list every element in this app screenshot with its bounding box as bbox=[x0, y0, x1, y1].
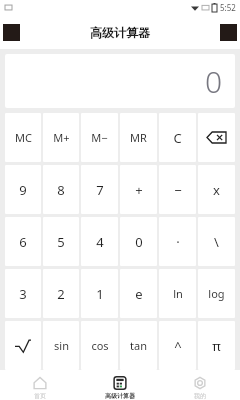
staticText: M− bbox=[91, 130, 108, 145]
staticText: − bbox=[174, 181, 182, 199]
button[interactable]: 7 bbox=[81, 165, 118, 214]
button[interactable]: Backspace bbox=[198, 113, 235, 162]
staticText: 3 bbox=[19, 285, 27, 303]
button[interactable]: 0 bbox=[120, 217, 157, 266]
staticText: MC bbox=[15, 130, 32, 145]
button[interactable]: 3 bbox=[5, 269, 41, 318]
staticText: sin bbox=[54, 338, 69, 353]
button[interactable]: log bbox=[198, 269, 235, 318]
staticText: 高级计算器 bbox=[105, 392, 135, 400]
staticText: 2 bbox=[57, 285, 65, 303]
staticText: π bbox=[212, 337, 221, 355]
button[interactable]: 4 bbox=[81, 217, 118, 266]
staticText: 4 bbox=[96, 233, 104, 251]
staticText: e bbox=[135, 285, 143, 303]
button[interactable]: 高级计算器 bbox=[80, 371, 160, 400]
button[interactable]: MR bbox=[120, 113, 157, 162]
button[interactable]: 5 bbox=[43, 217, 79, 266]
staticText: cos bbox=[91, 338, 109, 353]
button[interactable]: sin bbox=[43, 321, 79, 370]
button[interactable]: − bbox=[159, 165, 196, 214]
button[interactable]: 0 bbox=[5, 54, 235, 108]
button[interactable]: C bbox=[159, 113, 196, 162]
button[interactable]: x bbox=[198, 165, 235, 214]
button[interactable]: 9 bbox=[5, 165, 41, 214]
staticText: 我的 bbox=[194, 392, 206, 400]
staticText: 6 bbox=[19, 233, 27, 251]
button[interactable]: MC bbox=[5, 113, 41, 162]
staticText: x bbox=[213, 181, 220, 199]
staticText: \ bbox=[214, 233, 219, 251]
staticText: 首页 bbox=[34, 392, 46, 400]
button[interactable]: \ bbox=[198, 217, 235, 266]
staticText: 5 bbox=[57, 233, 65, 251]
button[interactable]: 首页 bbox=[0, 371, 80, 400]
staticText: 9 bbox=[19, 181, 27, 199]
button[interactable]: M+ bbox=[43, 113, 79, 162]
button[interactable]: 我的 bbox=[160, 371, 240, 400]
button[interactable]: e bbox=[120, 269, 157, 318]
staticText: 7 bbox=[96, 181, 104, 199]
button[interactable]: 8 bbox=[43, 165, 79, 214]
button[interactable]: + bbox=[120, 165, 157, 214]
staticText: · bbox=[176, 233, 180, 251]
staticText: 0 bbox=[205, 61, 223, 102]
staticText: ^ bbox=[174, 337, 182, 355]
button[interactable]: M− bbox=[81, 113, 118, 162]
button[interactable]: ^ bbox=[159, 321, 196, 370]
button[interactable]: cos bbox=[81, 321, 118, 370]
staticText: 0 bbox=[135, 233, 143, 251]
staticText: 8 bbox=[57, 181, 65, 199]
staticText: + bbox=[135, 181, 143, 199]
staticText: MR bbox=[130, 130, 147, 145]
staticText: log bbox=[208, 286, 225, 301]
button[interactable]: π bbox=[198, 321, 235, 370]
staticText: C bbox=[173, 129, 182, 147]
button[interactable]: 2 bbox=[43, 269, 79, 318]
staticText: 5:52 bbox=[220, 2, 236, 13]
staticText: 1 bbox=[96, 285, 104, 303]
staticText: tan bbox=[130, 338, 147, 353]
staticText: 高级计算器 bbox=[90, 25, 150, 40]
staticText: ln bbox=[173, 286, 183, 301]
button[interactable]: · bbox=[159, 217, 196, 266]
button[interactable]: tan bbox=[120, 321, 157, 370]
button[interactable]: 1 bbox=[81, 269, 118, 318]
button[interactable]: 6 bbox=[5, 217, 41, 266]
staticText: M+ bbox=[53, 130, 70, 145]
button[interactable]: ln bbox=[159, 269, 196, 318]
button[interactable]: Square root bbox=[5, 321, 41, 370]
